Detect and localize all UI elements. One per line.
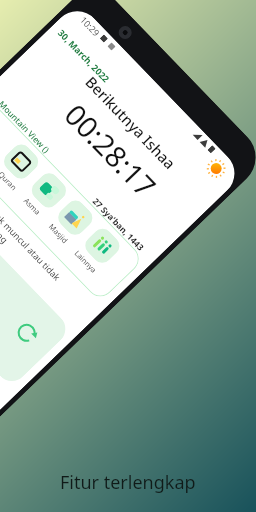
staticText: 10:29 (78, 13, 103, 39)
button[interactable]: Al-Quran (0, 140, 43, 192)
button[interactable]: Masjid (45, 196, 96, 248)
staticText: 00:28:17 (13, 50, 201, 243)
staticText: 30, March, 2022 (56, 26, 112, 84)
staticText: Masjid (47, 221, 71, 246)
staticText: Asma (22, 196, 43, 217)
staticText: Al-Quran (0, 162, 19, 192)
staticText: 27 Sya'ban, 1443 (0, 85, 146, 253)
button[interactable]: Asma (18, 169, 70, 221)
other: Refresh (12, 319, 41, 347)
staticText: Fitur terlengkap (60, 470, 196, 495)
staticText: Jika waktu adzan tidak muncul atau tidak… (0, 150, 64, 292)
staticText: Mountain View () (0, 98, 52, 156)
button[interactable]: Lainnya (72, 224, 124, 276)
staticText: Lainnya (72, 248, 99, 275)
staticText: Berikutnya Ishaa (40, 29, 218, 213)
